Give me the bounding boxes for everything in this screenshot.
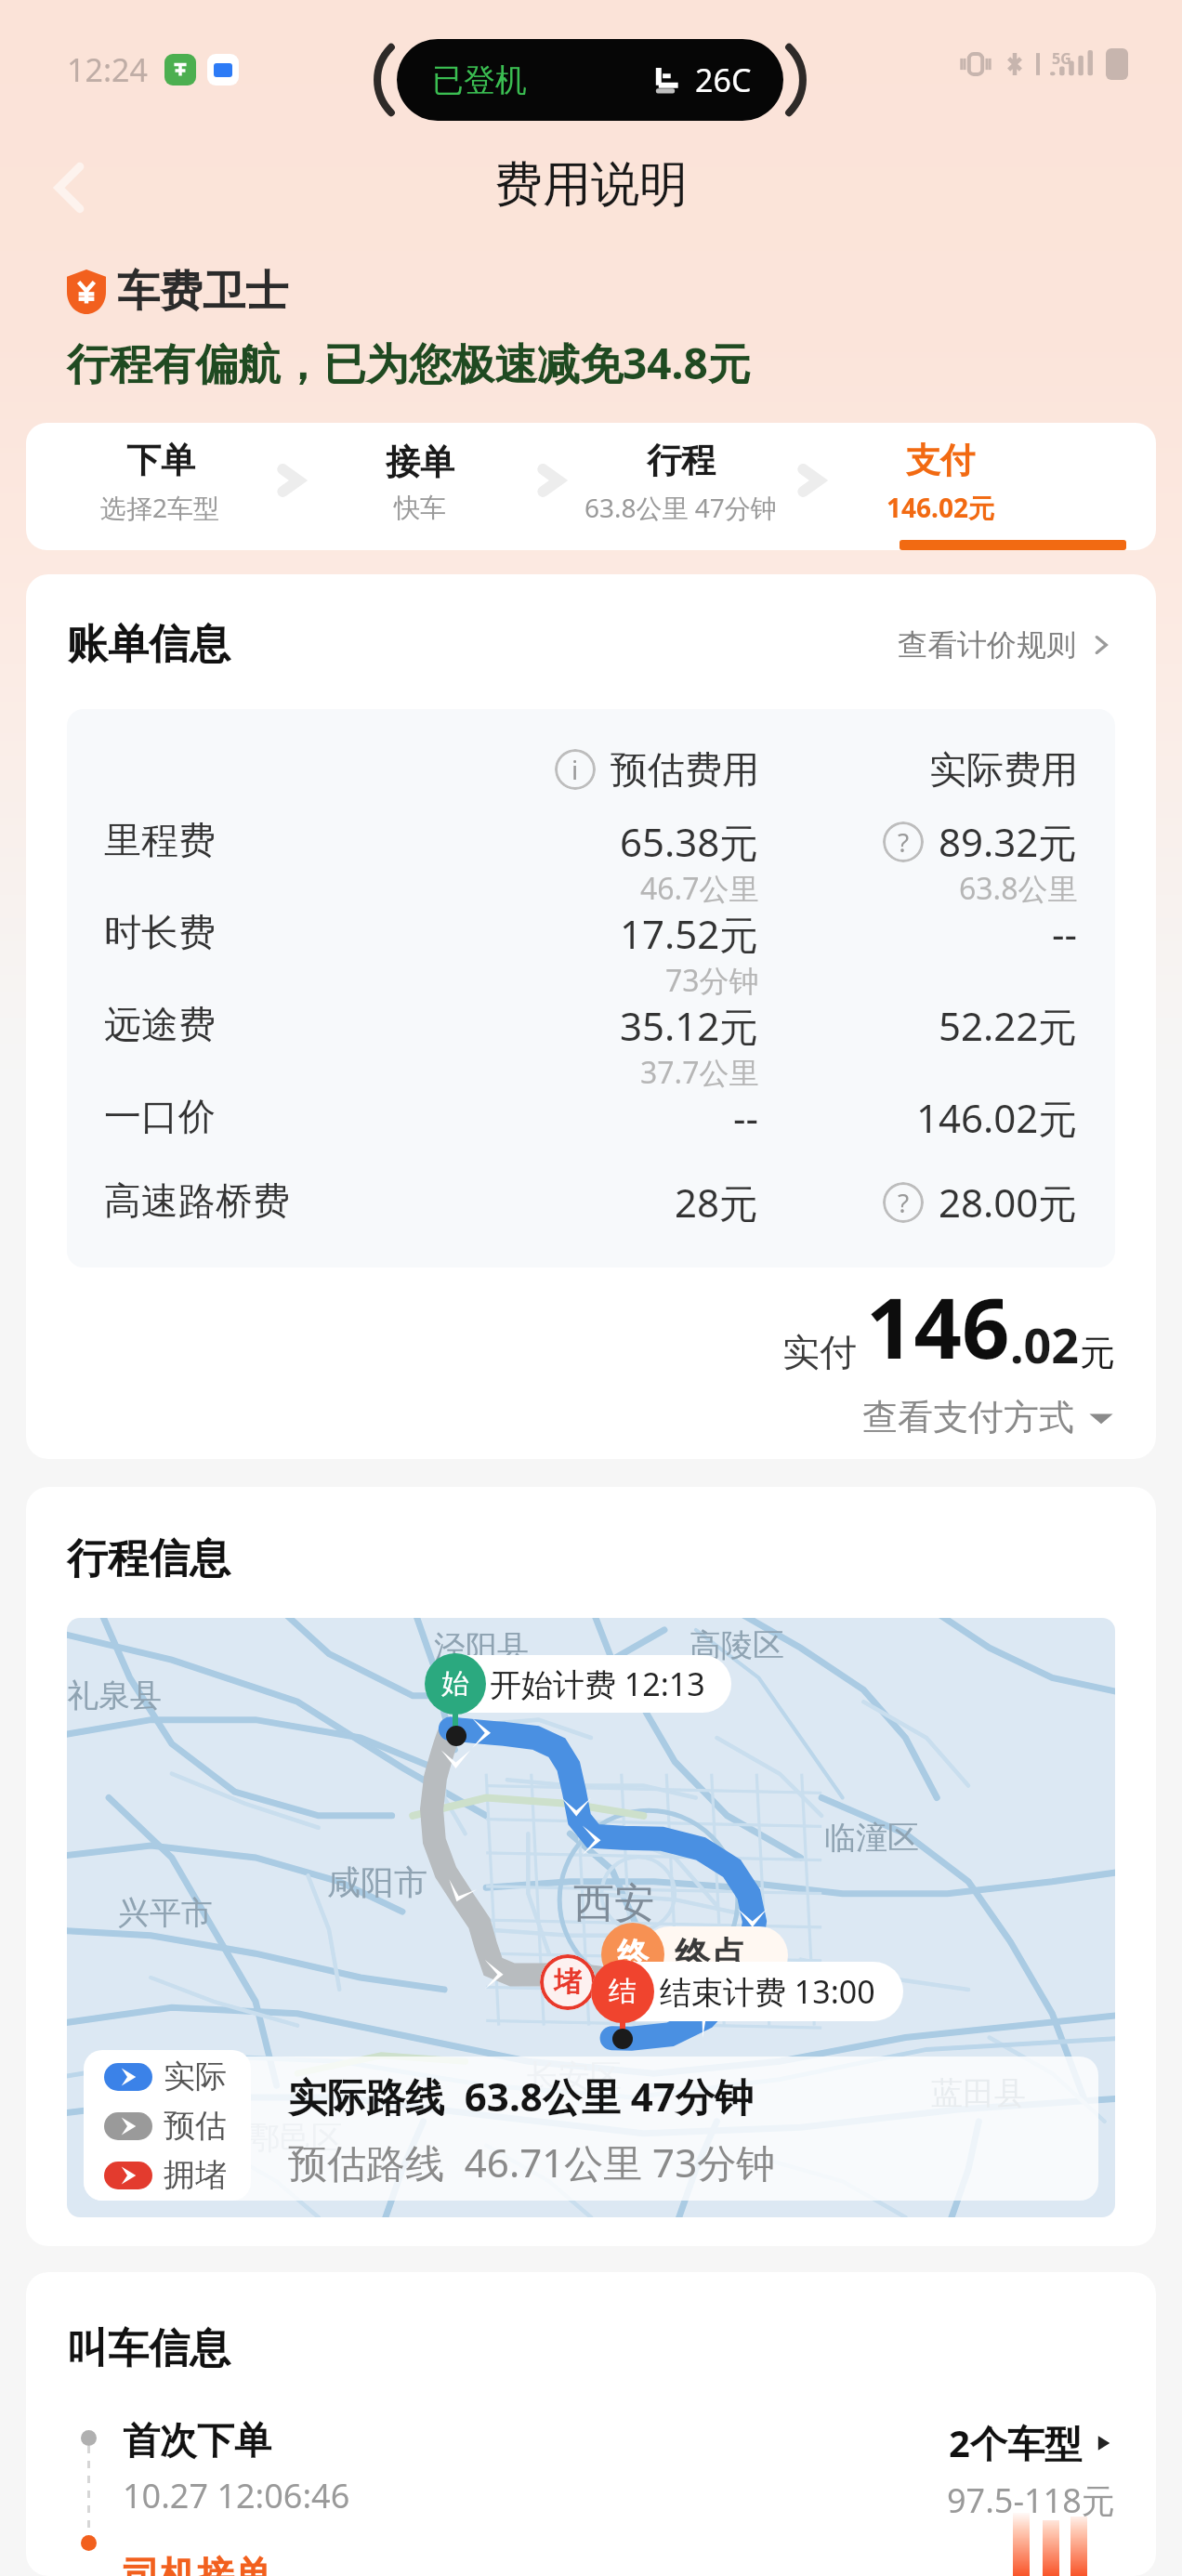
staticText: 礼泉县: [67, 1676, 162, 1715]
staticText: 终点: [675, 1933, 745, 1978]
button[interactable]: 2个车型: [949, 2417, 1115, 2468]
staticText: 咸阳市: [327, 1861, 427, 1903]
staticText: 63.8公里 47分钟: [584, 490, 777, 525]
staticText: 63.8公里: [959, 868, 1078, 907]
staticText: 行程: [647, 439, 716, 482]
staticText: 时长费: [104, 909, 400, 955]
staticText: 65.38元: [620, 815, 759, 868]
staticText: i: [571, 752, 579, 787]
staticText: 行程有偏航，已为您极速减免34.8元: [67, 334, 751, 392]
staticText: 里程费: [104, 817, 400, 863]
staticText: 实付: [782, 1329, 857, 1375]
button[interactable]: 查看计价规则: [898, 626, 1115, 664]
staticText: 司机接单: [123, 2552, 271, 2576]
staticText: 账单信息: [67, 619, 230, 670]
staticText: 终: [617, 1935, 649, 1975]
staticText: 2个车型: [949, 2417, 1082, 2468]
staticText: 行程信息: [67, 1533, 230, 1584]
staticText: 实际路线 63.8公里 47分钟: [288, 2070, 754, 2123]
staticText: 长安区: [527, 2057, 622, 2096]
staticText: 蓝田县: [931, 2073, 1026, 2113]
staticText: 146.02元: [916, 1091, 1078, 1144]
staticText: 52.22元: [939, 999, 1078, 1052]
staticText: 查看支付方式: [862, 1395, 1074, 1439]
button[interactable]: 查看支付方式: [862, 1395, 1115, 1439]
staticText: --: [1052, 907, 1078, 960]
staticText: 73分钟: [665, 960, 759, 999]
staticText: 28.00元: [939, 1176, 1078, 1229]
staticText: 12:24: [67, 48, 148, 91]
staticText: 预估费用: [611, 746, 759, 793]
staticText: 下单: [126, 439, 195, 482]
staticText: 预估: [164, 2106, 227, 2146]
staticText: 已登机: [432, 60, 527, 100]
staticText: 费用说明: [494, 154, 688, 216]
staticText: 一口价: [104, 1093, 400, 1139]
staticText: 高陵区: [689, 1625, 784, 1665]
staticText: 临潼区: [824, 1818, 919, 1858]
staticText: 结束计费 13:00: [660, 1970, 875, 2013]
staticText: 鄠邑区: [248, 2118, 343, 2158]
button[interactable]: 支付: [810, 423, 1070, 550]
staticText: 17.52元: [620, 907, 759, 960]
staticText: 快车: [394, 492, 446, 524]
staticText: 28元: [675, 1176, 759, 1229]
staticText: 接单: [386, 440, 454, 484]
staticText: 146.02元: [886, 490, 994, 525]
staticText: 5G: [1052, 48, 1071, 69]
staticText: 始: [441, 1666, 469, 1702]
staticText: 26C: [695, 59, 752, 101]
staticText: 元: [1080, 1331, 1115, 1375]
button[interactable]: Back: [30, 149, 108, 227]
staticText: 叫车信息: [67, 2323, 230, 2374]
staticText: 97.5-118元: [947, 2477, 1115, 2523]
button[interactable]: 接单: [290, 423, 550, 550]
staticText: 选择2车型: [100, 490, 220, 525]
staticText: 高速路桥费: [104, 1177, 400, 1224]
staticText: 查看计价规则: [898, 626, 1076, 664]
staticText: 拥堵: [164, 2155, 227, 2195]
button[interactable]: 行程: [550, 423, 810, 550]
staticText: 兴平市: [118, 1893, 213, 1933]
staticText: 146: [866, 1269, 1010, 1384]
button[interactable]: 下单: [30, 423, 290, 550]
staticText: 支付: [906, 439, 975, 482]
staticText: 车费卫士: [117, 265, 288, 319]
staticText: 89.32元: [939, 815, 1078, 868]
staticText: 泾阳县: [434, 1627, 529, 1667]
staticText: 首次下单: [123, 2417, 271, 2464]
staticText: 37.7公里: [640, 1052, 759, 1091]
staticText: 实际费用: [929, 746, 1078, 793]
staticText: ?: [898, 824, 910, 860]
staticText: 西安: [573, 1878, 655, 1929]
staticText: 46.7公里: [640, 868, 759, 907]
staticText: 远途费: [104, 1001, 400, 1047]
staticText: 35.12元: [620, 999, 759, 1052]
staticText: 堵: [554, 1965, 582, 2000]
staticText: --: [733, 1091, 759, 1144]
staticText: .02: [1010, 1311, 1080, 1377]
staticText: 预估路线 46.71公里 73分钟: [288, 2136, 776, 2188]
staticText: ?: [898, 1185, 910, 1220]
staticText: 实际: [164, 2057, 227, 2096]
staticText: 10.27 12:06:46: [123, 2473, 350, 2518]
staticText: 开始计费 12:13: [490, 1663, 705, 1705]
staticText: 结: [609, 1974, 637, 2009]
